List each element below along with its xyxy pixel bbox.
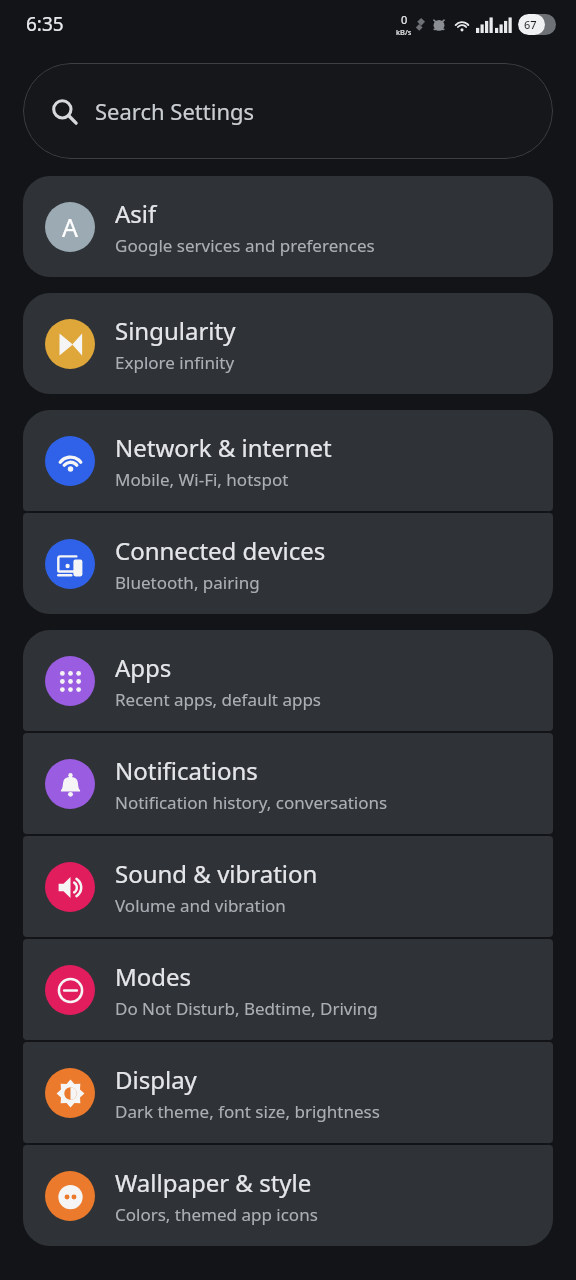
staticText: Display [115,1063,197,1096]
button[interactable]: Sound & vibration [23,836,553,937]
staticText: Recent apps, default apps [115,688,322,711]
button[interactable]: Network & internet [23,410,553,511]
staticText: 0 [401,12,408,27]
staticText: Do Not Disturb, Bedtime, Driving [115,997,378,1020]
staticText: Network & internet [115,431,332,464]
button[interactable]: A [23,176,553,277]
staticText: Sound & vibration [115,857,318,890]
button[interactable]: Connected devices [23,513,553,614]
staticText: Singularity [115,314,236,347]
staticText: Modes [115,960,192,993]
staticText: Bluetooth, pairing [115,571,260,594]
button[interactable]: Display [23,1042,553,1143]
button[interactable]: Modes [23,939,553,1040]
button[interactable]: Search Settings [23,63,553,159]
staticText: Google services and preferences [115,234,375,257]
staticText: Search Settings [95,96,255,126]
staticText: Wallpaper & style [115,1166,312,1199]
staticText: Explore infinity [115,351,235,374]
staticText: Apps [115,651,172,684]
staticText: 67 [524,17,537,32]
staticText: Asif [115,197,157,230]
staticText: Dark theme, font size, brightness [115,1100,380,1123]
button[interactable]: Apps [23,630,553,731]
staticText: Notification history, conversations [115,791,388,814]
button[interactable]: Singularity [23,293,553,394]
staticText: kB/s [396,27,412,37]
staticText: Notifications [115,754,258,787]
staticText: A [62,210,78,244]
staticText: Mobile, Wi-Fi, hotspot [115,468,289,491]
staticText: 6:35 [26,11,64,37]
button[interactable]: Notifications [23,733,553,834]
staticText: Colors, themed app icons [115,1203,318,1226]
staticText: Connected devices [115,534,326,567]
button[interactable]: Wallpaper & style [23,1145,553,1246]
staticText: Volume and vibration [115,894,286,917]
